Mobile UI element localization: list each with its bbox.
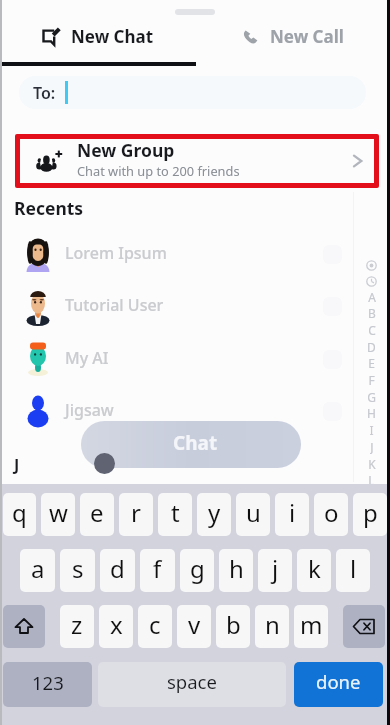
- staticText: E: [368, 355, 375, 370]
- button[interactable]: i: [275, 493, 309, 536]
- button[interactable]: Lorem Ipsum: [0, 228, 390, 280]
- staticText: h: [229, 552, 244, 585]
- staticText: w: [49, 496, 68, 529]
- button[interactable]: done: [294, 662, 383, 707]
- button[interactable]: j: [258, 549, 292, 592]
- staticText: j: [272, 552, 279, 585]
- button[interactable]: n: [255, 605, 289, 648]
- staticText: r: [131, 496, 141, 529]
- staticText: x: [110, 608, 123, 641]
- staticText: New Group: [77, 138, 175, 162]
- staticText: g: [190, 552, 205, 585]
- button[interactable]: space: [98, 662, 286, 707]
- staticText: Tutorial User: [65, 294, 164, 316]
- staticText: New Chat: [71, 25, 154, 48]
- staticText: e: [90, 496, 104, 529]
- button[interactable]: f: [140, 549, 175, 592]
- staticText: C: [368, 322, 376, 337]
- button[interactable]: y: [197, 493, 231, 536]
- staticText: d: [110, 552, 125, 585]
- staticText: B: [368, 305, 376, 320]
- staticText: space: [167, 669, 217, 694]
- button[interactable]: v: [177, 605, 211, 648]
- button[interactable]: Tutorial User: [0, 280, 390, 332]
- button[interactable]: x: [99, 605, 133, 648]
- staticText: My AI: [65, 347, 109, 369]
- staticText: y: [208, 496, 221, 529]
- staticText: k: [308, 552, 321, 585]
- staticText: c: [149, 608, 161, 641]
- button[interactable]: Backspace: [343, 605, 385, 648]
- staticText: L: [368, 472, 375, 487]
- button[interactable]: m: [294, 605, 328, 648]
- staticText: Chat with up to 200 friends: [77, 162, 240, 179]
- button[interactable]: d: [100, 549, 135, 592]
- button[interactable]: c: [138, 605, 172, 648]
- staticText: m: [300, 608, 323, 641]
- staticText: Lorem Ipsum: [65, 242, 167, 264]
- button[interactable]: q: [3, 493, 36, 536]
- staticText: Recents: [14, 196, 84, 220]
- button[interactable]: New Group: [15, 134, 379, 188]
- button[interactable]: g: [180, 549, 214, 592]
- staticText: K: [368, 456, 376, 471]
- button[interactable]: z: [60, 605, 94, 648]
- staticText: b: [226, 608, 241, 641]
- button[interactable]: b: [216, 605, 250, 648]
- staticText: I: [369, 422, 374, 437]
- staticText: s: [72, 552, 84, 585]
- button[interactable]: Chat: [81, 421, 301, 468]
- button[interactable]: 123: [3, 662, 92, 707]
- other: Recent: [366, 276, 377, 287]
- staticText: D: [367, 339, 376, 354]
- button[interactable]: o: [314, 493, 348, 536]
- button[interactable]: New Chat: [0, 18, 195, 54]
- button[interactable]: New Call: [195, 18, 390, 54]
- staticText: J: [14, 454, 20, 476]
- button[interactable]: Jigsaw: [0, 385, 390, 437]
- staticText: i: [289, 496, 296, 529]
- staticText: H: [367, 405, 376, 420]
- staticText: q: [12, 496, 27, 529]
- staticText: n: [265, 608, 280, 641]
- staticText: o: [324, 496, 339, 529]
- staticText: done: [316, 669, 361, 694]
- staticText: l: [350, 552, 357, 585]
- button[interactable]: e: [80, 493, 114, 536]
- staticText: New Call: [270, 25, 344, 48]
- button[interactable]: p: [353, 493, 387, 536]
- button[interactable]: My AI: [0, 333, 390, 385]
- button[interactable]: Shift: [3, 605, 45, 648]
- button[interactable]: k: [297, 549, 331, 592]
- staticText: a: [31, 552, 45, 585]
- staticText: F: [368, 372, 375, 387]
- button[interactable]: u: [236, 493, 270, 536]
- button[interactable]: s: [60, 549, 95, 592]
- button[interactable]: h: [219, 549, 253, 592]
- staticText: p: [363, 496, 378, 529]
- staticText: t: [171, 496, 180, 529]
- button[interactable]: a: [20, 549, 55, 592]
- staticText: Jigsaw: [65, 399, 114, 421]
- staticText: G: [367, 389, 376, 404]
- other: Bitmoji: [366, 260, 377, 271]
- button[interactable]: To:: [19, 76, 366, 109]
- staticText: f: [153, 552, 162, 585]
- staticText: 123: [32, 670, 64, 695]
- staticText: Chat: [173, 430, 218, 456]
- button[interactable]: l: [336, 549, 370, 592]
- button[interactable]: w: [41, 493, 75, 536]
- staticText: A: [368, 289, 376, 304]
- staticText: v: [188, 608, 201, 641]
- button[interactable]: r: [119, 493, 153, 536]
- staticText: z: [71, 608, 83, 641]
- staticText: J: [370, 439, 374, 454]
- staticText: To:: [33, 82, 56, 104]
- staticText: u: [246, 496, 261, 529]
- button[interactable]: t: [158, 493, 192, 536]
